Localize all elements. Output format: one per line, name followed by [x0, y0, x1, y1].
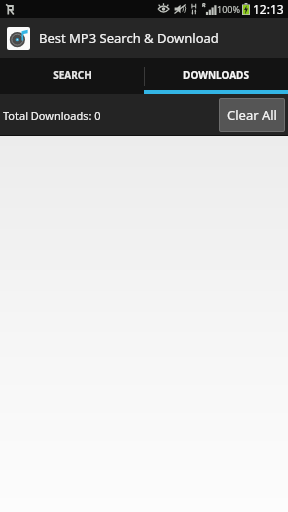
staticText: Total Downloads: 0: [3, 108, 101, 123]
button[interactable]: Best MP3 Search & Download: [0, 18, 288, 58]
staticText: 100%: [217, 3, 240, 15]
staticText: Best MP3 Search & Download: [39, 29, 219, 47]
button[interactable]: DOWNLOADS: [144, 58, 288, 94]
staticText: DOWNLOADS: [183, 68, 249, 82]
staticText: 12:13: [253, 1, 284, 17]
staticText: SEARCH: [53, 68, 92, 82]
button[interactable]: Clear All: [219, 98, 285, 132]
staticText: Clear All: [227, 106, 277, 124]
button[interactable]: SEARCH: [0, 58, 144, 94]
